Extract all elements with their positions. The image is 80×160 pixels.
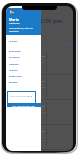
button[interactable]: LOG OFF xyxy=(6,38,41,44)
staticText: 2/14-45 AVAILABLE xyxy=(10,94,33,97)
staticText: TIMELINE xyxy=(9,63,19,66)
staticText: TAP SOFTWARE APP xyxy=(12,104,36,107)
staticText: 12:30 pm xyxy=(36,17,63,25)
staticText: Together xyxy=(9,30,19,33)
staticText: Maria xyxy=(9,17,19,22)
staticText: OPEN TODO xyxy=(9,50,21,53)
staticText: Add Features, Stay Up xyxy=(9,27,33,30)
staticText: CALENDAR xyxy=(9,56,20,59)
staticText: LOG OFF xyxy=(9,40,18,43)
button[interactable]: UPDATES xyxy=(6,67,41,73)
staticText: UPDATES xyxy=(9,69,18,72)
staticText: Customer xyxy=(9,22,20,25)
button[interactable]: OPERATIONS xyxy=(6,73,41,79)
button[interactable]: OPEN TODO xyxy=(6,48,41,54)
button[interactable]: CALENDAR xyxy=(6,54,41,60)
button[interactable]: REFRESH xyxy=(6,79,41,85)
button[interactable]: TAP SOFTWARE APP xyxy=(7,103,41,107)
staticText: OPERATIONS xyxy=(9,75,22,78)
button[interactable]: 2/14-45 AVAILABLE xyxy=(7,91,36,104)
staticText: REFRESH xyxy=(9,81,18,84)
button[interactable]: TIMELINE xyxy=(6,61,41,67)
staticText: PUNCH IN xyxy=(59,42,73,46)
